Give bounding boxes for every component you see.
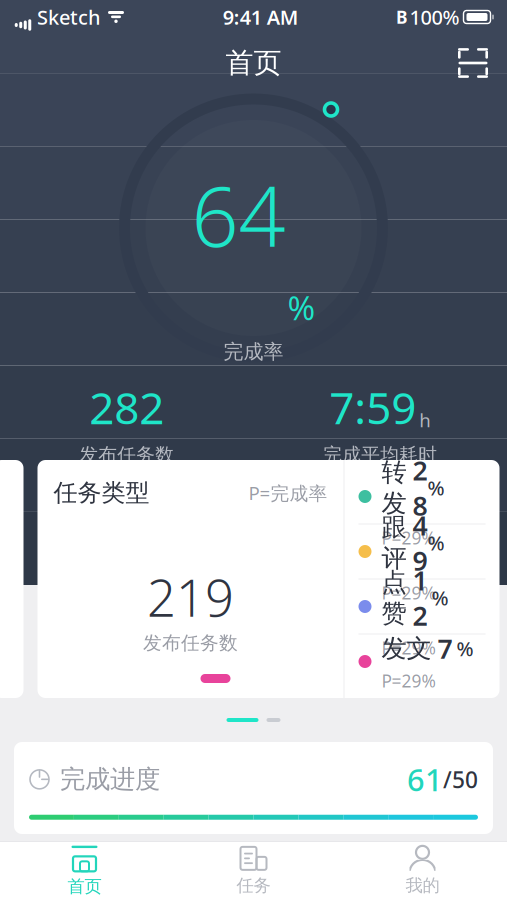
staticText: 跟评 bbox=[381, 512, 406, 574]
button[interactable]: 任务 bbox=[169, 842, 338, 900]
staticText: 首页 bbox=[67, 876, 101, 897]
staticText: 28 bbox=[412, 452, 427, 523]
button[interactable]: 扫码 bbox=[451, 41, 495, 85]
staticText: % bbox=[431, 584, 448, 611]
staticText: 任务类型 bbox=[53, 478, 149, 507]
button[interactable]: 我的 bbox=[338, 842, 507, 900]
staticText: 点赞 bbox=[381, 567, 406, 629]
staticText: 首页 bbox=[225, 46, 281, 80]
staticText: 完成率 bbox=[223, 339, 283, 364]
staticText: 发布任务数 bbox=[143, 632, 238, 655]
staticText: 7 bbox=[437, 631, 452, 666]
staticText: 任务 bbox=[236, 875, 270, 896]
staticText: 完成进度 bbox=[60, 764, 160, 795]
staticText: 9:41 AM bbox=[223, 4, 299, 30]
staticText: 发文 bbox=[381, 633, 431, 664]
staticText: 转发 bbox=[381, 457, 406, 519]
staticText: h bbox=[419, 408, 431, 432]
staticText: 100% bbox=[409, 4, 459, 30]
staticText: 我的 bbox=[405, 875, 439, 896]
staticText: P=完成率 bbox=[248, 480, 327, 505]
staticText: P=29% bbox=[381, 636, 435, 659]
staticText: /50 bbox=[443, 764, 478, 794]
staticText: P=29% bbox=[381, 669, 435, 692]
staticText: % bbox=[427, 529, 444, 556]
staticText: P=29% bbox=[381, 526, 435, 549]
staticText: B bbox=[396, 5, 408, 28]
staticText: P=29% bbox=[381, 581, 435, 604]
staticText: % bbox=[456, 635, 473, 662]
staticText: % bbox=[427, 474, 444, 501]
staticText: 61 bbox=[407, 759, 443, 800]
staticText: 49 bbox=[412, 507, 427, 578]
staticText: 完成平均耗时 bbox=[323, 443, 437, 466]
staticText: 64 bbox=[191, 160, 285, 270]
button[interactable]: 首页 bbox=[0, 842, 169, 900]
staticText: 12 bbox=[412, 562, 427, 633]
staticText: Sketch bbox=[37, 4, 101, 30]
staticText: 7:59 bbox=[329, 378, 416, 436]
staticText: 219 bbox=[147, 563, 234, 631]
staticText: 282 bbox=[89, 378, 164, 436]
staticText: % bbox=[287, 285, 315, 329]
staticText: 发布任务数 bbox=[79, 443, 174, 466]
